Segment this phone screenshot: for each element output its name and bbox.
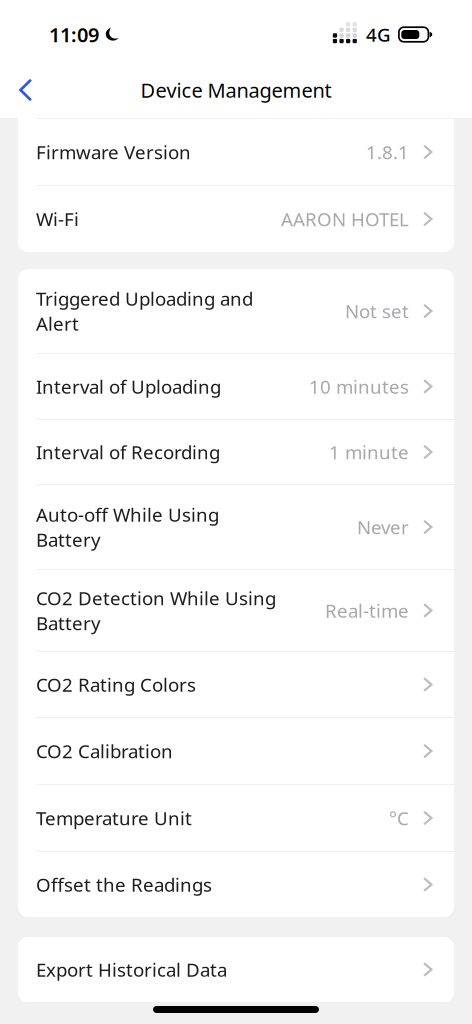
staticText: AARON HOTEL — [281, 207, 409, 231]
staticText: Export Historical Data — [36, 957, 227, 982]
button[interactable]: Back — [5, 66, 46, 114]
button[interactable]: Temperature Unit — [18, 785, 454, 851]
button[interactable]: CO2 Rating Colors — [18, 652, 454, 717]
staticText: 1 minute — [329, 440, 409, 464]
button[interactable]: CO2 Detection While Using Battery — [18, 570, 454, 651]
staticText: Firmware Version — [36, 140, 191, 164]
button[interactable]: CO2 Calibration — [18, 718, 454, 784]
staticText: Wi-Fi — [36, 207, 79, 231]
staticText: Never — [357, 515, 409, 539]
button[interactable]: Interval of Uploading — [18, 354, 454, 419]
staticText: Offset the Readings — [36, 872, 212, 897]
button[interactable]: Firmware Version — [18, 119, 454, 185]
staticText: Device Management — [140, 77, 331, 103]
staticText: Auto-off While Using Battery — [36, 502, 219, 552]
staticText: 11:09 — [49, 21, 99, 48]
staticText: Interval of Uploading — [36, 374, 221, 399]
button[interactable]: Export Historical Data — [18, 937, 454, 1002]
button[interactable]: Interval of Recording — [18, 420, 454, 484]
staticText: Interval of Recording — [36, 440, 220, 464]
staticText: °C — [389, 806, 409, 830]
button[interactable]: Triggered Uploading and Alert — [18, 269, 454, 353]
staticText: Triggered Uploading and Alert — [36, 286, 253, 336]
button[interactable]: Auto-off While Using Battery — [18, 485, 454, 569]
staticText: Not set — [345, 299, 409, 323]
staticText: 10 minutes — [309, 374, 409, 399]
staticText: 1.8.1 — [366, 140, 409, 164]
staticText: Real-time — [325, 598, 409, 623]
button[interactable]: Wi-Fi — [18, 186, 454, 252]
staticText: CO2 Rating Colors — [36, 672, 196, 697]
staticText: CO2 Detection While Using Battery — [36, 586, 276, 635]
staticText: Temperature Unit — [36, 806, 192, 830]
staticText: CO2 Calibration — [36, 739, 173, 763]
staticText: 4G — [366, 22, 391, 47]
button[interactable]: Wi-Fi Name — [18, 52, 454, 118]
button[interactable]: Offset the Readings — [18, 852, 454, 917]
